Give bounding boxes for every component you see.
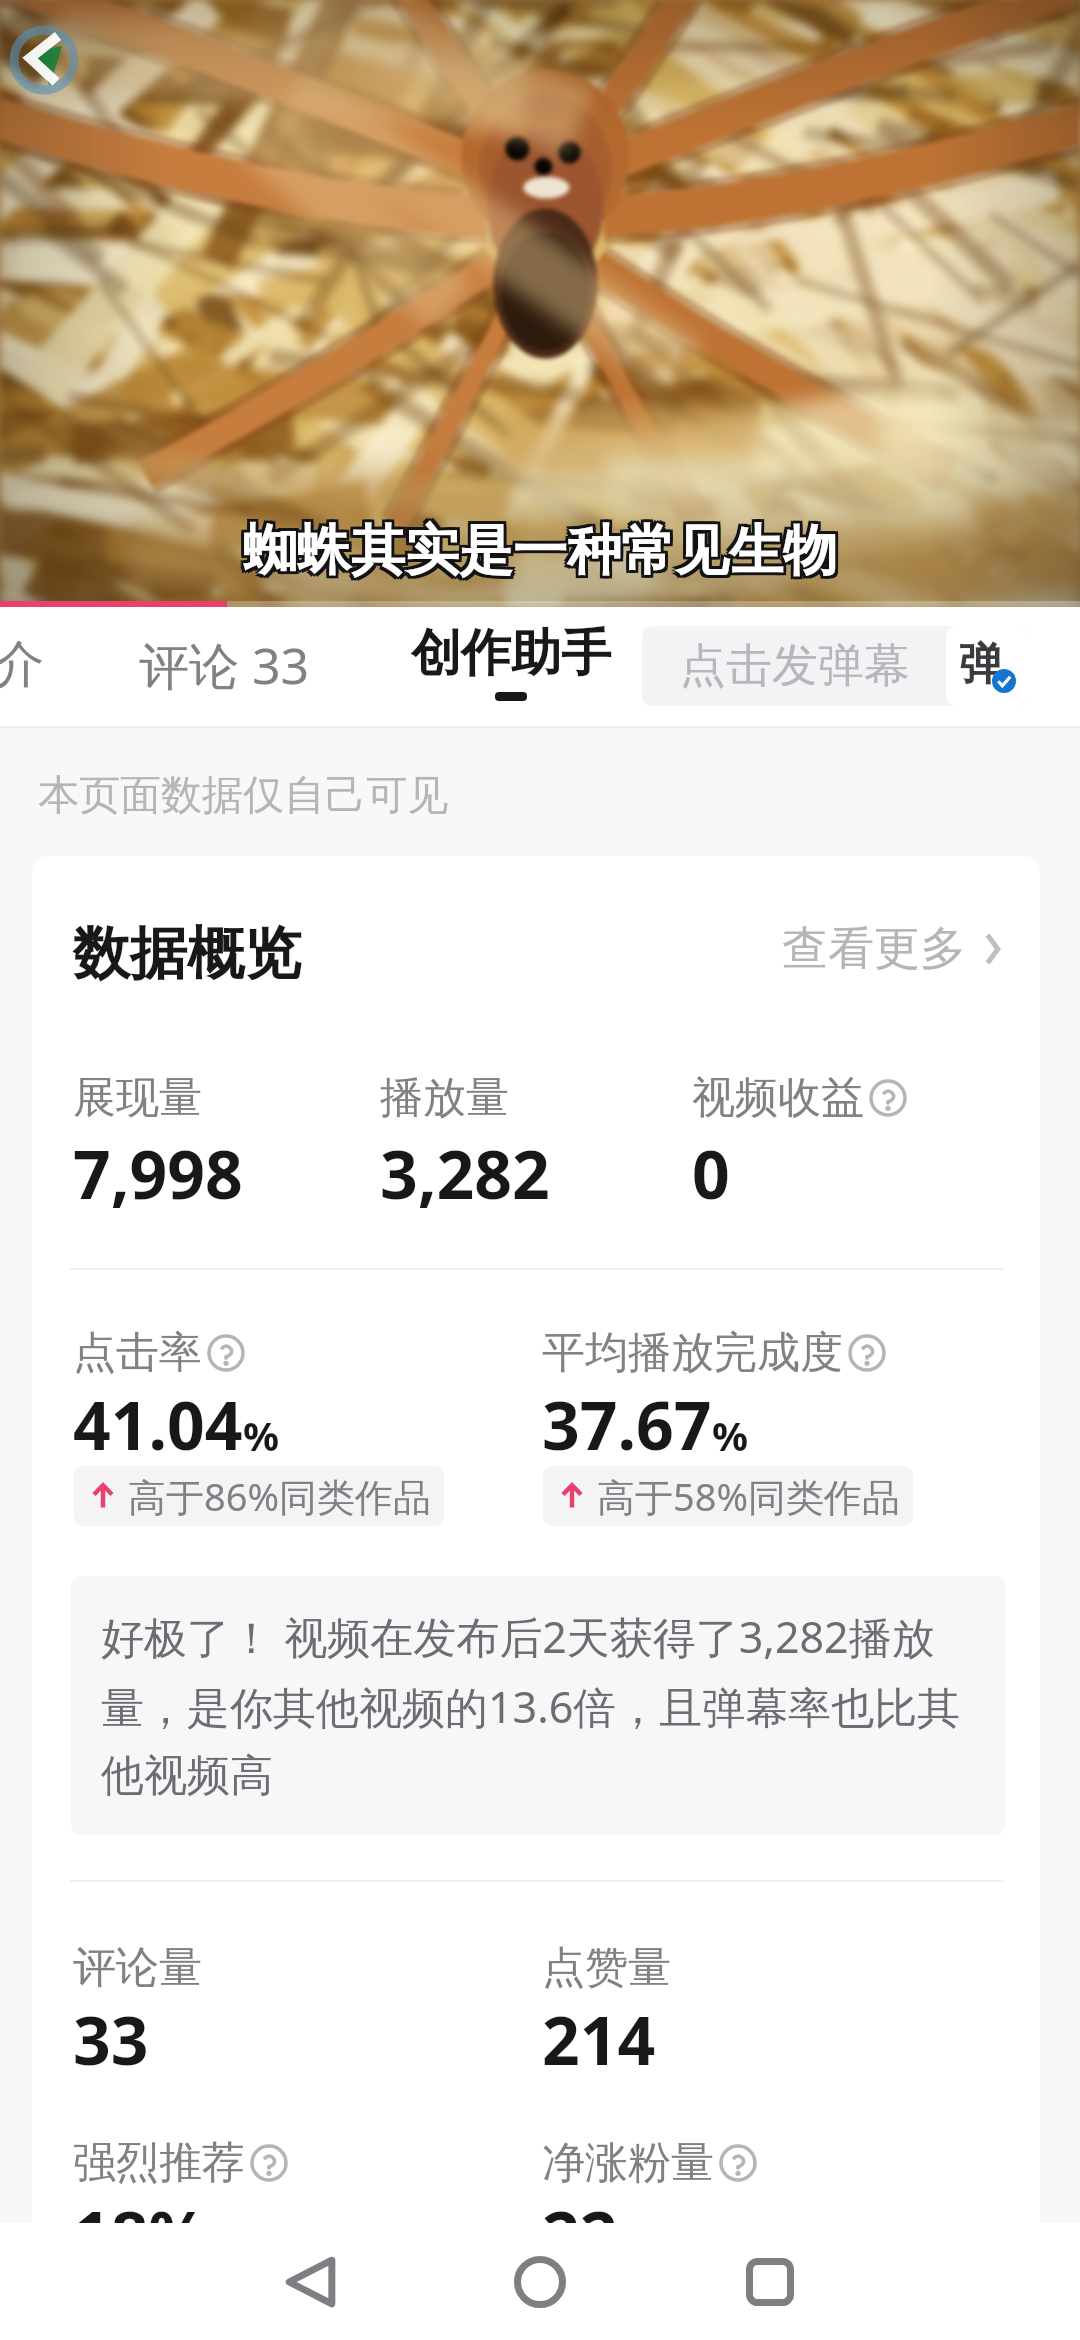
staticText: 高于86%同类作品 [128,1470,432,1522]
staticText: 蜘蛛其实是一种常见生物 [246,520,840,588]
staticText: 7,998 [73,1128,243,1218]
staticText: 查看更多 [782,920,966,978]
staticText: 0 [692,1128,730,1218]
staticText: % [243,1408,280,1462]
staticText: 点赞量 [542,1941,671,1995]
staticText: 蜘蛛其实是一种常见生物 [246,517,840,585]
staticText: 3,282 [380,1128,550,1218]
staticText: 展现量 [73,1071,202,1125]
staticText: 18% [73,2189,209,2223]
staticText: 播放量 [380,1071,509,1125]
staticText: 高于58%同类作品 [597,1470,901,1522]
staticText: 33 [73,1994,149,2084]
staticText: 蜘蛛其实是一种常见生物 [243,520,837,588]
staticText: 22 [542,2189,618,2223]
button[interactable]: 查看更多 [782,920,1010,978]
staticText: 平均播放完成度 [542,1326,843,1380]
staticText: 214 [542,1994,656,2084]
staticText: 蜘蛛其实是一种常见生物 [240,517,834,585]
staticText: 创作助手 [411,622,611,685]
staticText: 蜘蛛其实是一种常见生物 [243,517,837,585]
button[interactable]: 点击发弹幕 [642,626,1028,706]
button[interactable]: 创作助手 [387,607,634,726]
staticText: 蜘蛛其实是一种常见生物 [240,514,834,582]
staticText: 本页面数据仅自己可见 [38,770,448,822]
staticText: 评论 33 [139,631,310,699]
staticText: 点击率 [73,1326,202,1380]
button[interactable]: Home [475,2223,605,2340]
button[interactable]: Back [245,2223,375,2340]
staticText: 数据概览 [73,918,301,990]
staticText: 蜘蛛其实是一种常见生物 [243,514,837,582]
staticText: 净涨粉量 [542,2136,714,2190]
staticText: 41.04 [73,1379,243,1469]
staticText: 强烈推荐 [73,2136,245,2190]
button[interactable]: 简介 [0,607,68,726]
staticText: % [712,1408,749,1462]
staticText: 好极了！ 视频在发布后2天获得了3,282播放量，是你其他视频的13.6倍，且弹… [101,1607,973,1803]
staticText: 弹 [959,637,1003,692]
staticText: 点击发弹幕 [680,637,910,695]
staticText: 蜘蛛其实是一种常见生物 [246,514,840,582]
button[interactable]: Recents [705,2223,835,2340]
staticText: 视频收益 [692,1071,864,1125]
button[interactable]: 评论 33 [114,607,334,726]
staticText: 蜘蛛其实是一种常见生物 [240,520,834,588]
button[interactable]: Send danmaku [946,626,1028,706]
staticText: 评论量 [73,1941,202,1995]
staticText: 简介 [0,633,44,696]
staticText: 37.67 [542,1379,712,1469]
